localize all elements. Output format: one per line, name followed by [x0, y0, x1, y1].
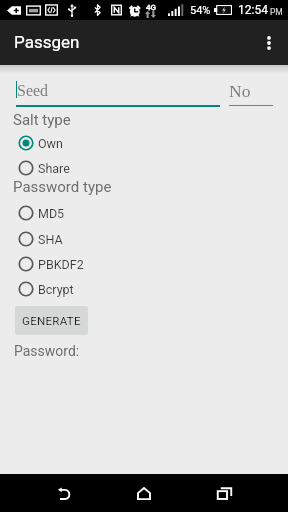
button[interactable]: No — [229, 76, 273, 107]
staticText: 12:54 — [238, 3, 268, 17]
button[interactable]: MD5 — [18, 200, 134, 226]
staticText: SHA — [38, 232, 63, 247]
button[interactable]: Own — [18, 130, 134, 156]
staticText: PBKDF2 — [38, 257, 84, 272]
staticText: Passgen — [14, 32, 80, 52]
staticText: Seed — [17, 82, 49, 100]
button[interactable]: Recent apps — [204, 474, 244, 512]
button[interactable]: Share — [18, 155, 134, 181]
staticText: Salt type — [13, 111, 71, 129]
staticText: Password type — [13, 178, 112, 196]
button[interactable]: More options — [249, 20, 288, 65]
staticText: No — [229, 81, 251, 100]
staticText: Password: — [14, 343, 80, 359]
button[interactable]: Seed — [16, 76, 220, 107]
staticText: GENERATE — [22, 314, 81, 327]
staticText: 4G — [146, 3, 156, 12]
button[interactable]: Bcrypt — [18, 276, 134, 302]
staticText: Bcrypt — [38, 282, 74, 297]
button[interactable]: Back — [44, 474, 84, 512]
button[interactable]: PBKDF2 — [18, 251, 134, 277]
staticText: 54% — [190, 4, 211, 17]
staticText: Share — [38, 161, 70, 176]
staticText: PM — [270, 7, 283, 17]
button[interactable]: SHA — [18, 226, 134, 252]
button[interactable]: Home — [124, 474, 164, 512]
staticText: MD5 — [38, 206, 65, 221]
staticText: Own — [38, 136, 63, 151]
button[interactable]: GENERATE — [15, 306, 88, 335]
